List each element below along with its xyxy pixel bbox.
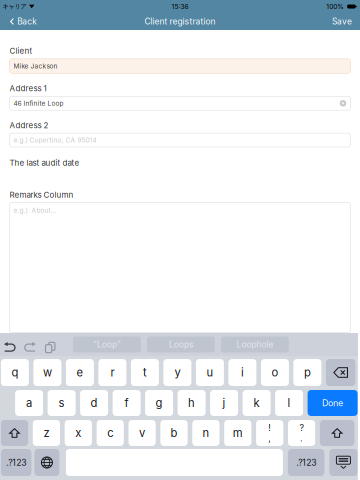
staticText: d [91, 396, 98, 410]
staticText: “Loop” [93, 339, 121, 350]
staticText: Address 1 [9, 83, 46, 93]
staticText: u [206, 366, 213, 379]
button[interactable]: “Loop” [73, 336, 141, 352]
staticText: v [139, 426, 145, 440]
staticText: b [170, 426, 177, 440]
button[interactable]: s [48, 390, 76, 416]
button[interactable]: f [113, 390, 141, 416]
button[interactable]: ? [288, 420, 315, 446]
button[interactable]: q [1, 359, 29, 386]
button[interactable]: r [98, 359, 126, 386]
staticText: e.g.) About... [13, 206, 56, 214]
staticText: n [202, 426, 209, 440]
button[interactable]: Clear text [337, 96, 348, 110]
button[interactable]: Paste [40, 332, 60, 356]
staticText: Remarks Column [9, 190, 73, 200]
staticText: c [107, 426, 113, 440]
button[interactable]: u [196, 359, 224, 386]
button[interactable]: .?123 [1, 449, 31, 476]
button[interactable]: g [145, 390, 173, 416]
staticText: e [76, 366, 83, 379]
button[interactable]: z [33, 420, 60, 446]
staticText: w [43, 366, 52, 379]
staticText: t [143, 366, 147, 379]
button[interactable]: Save [325, 13, 359, 30]
staticText: キャリア [2, 3, 26, 10]
button[interactable]: k [243, 390, 271, 416]
button[interactable]: e [66, 359, 94, 386]
button[interactable]: y [163, 359, 191, 386]
button[interactable]: ! [256, 420, 283, 446]
button[interactable]: n [192, 420, 219, 446]
button[interactable]: Loophole [221, 336, 289, 352]
staticText: e.g.) Cupertino, CA 95014 [13, 136, 96, 144]
staticText: q [11, 366, 18, 379]
button[interactable]: p [293, 359, 321, 386]
staticText: g [156, 396, 163, 410]
staticText: Loops [169, 339, 193, 350]
button[interactable]: w [33, 359, 61, 386]
button[interactable]: Back [1, 13, 46, 30]
button[interactable]: Redo [20, 332, 40, 356]
button[interactable]: x [65, 420, 92, 446]
staticText: k [254, 396, 260, 410]
staticText: Save [332, 16, 352, 27]
button[interactable]: h [178, 390, 206, 416]
staticText: , [268, 433, 271, 444]
button[interactable]: v [128, 420, 156, 446]
staticText: j [223, 396, 226, 410]
staticText: z [43, 426, 49, 440]
button[interactable]: b [160, 420, 188, 446]
staticText: Back [17, 16, 37, 27]
button[interactable]: Done [308, 390, 358, 416]
button[interactable]: c [97, 420, 124, 446]
button[interactable]: i [228, 359, 256, 386]
staticText: Loophole [236, 339, 273, 350]
button[interactable]: Undo [0, 332, 20, 356]
staticText: 15:36 [171, 2, 188, 11]
button[interactable]: Hide keyboard [329, 449, 357, 476]
staticText: Address 2 [9, 120, 48, 130]
staticText: r [110, 366, 114, 379]
button[interactable]: l [275, 390, 303, 416]
staticText: Client registration [144, 16, 215, 27]
button[interactable]: d [80, 390, 108, 416]
staticText: h [188, 396, 195, 410]
staticText: Client [9, 46, 32, 56]
button[interactable]: .?123 [288, 449, 324, 476]
staticText: .?123 [296, 457, 316, 468]
staticText: . [300, 433, 303, 444]
button[interactable]: a [15, 390, 43, 416]
staticText: l [288, 396, 291, 410]
staticText: a [26, 396, 32, 410]
staticText: The last audit date [9, 158, 79, 168]
button[interactable]: m [224, 420, 251, 446]
staticText: Mike Jackson [13, 62, 57, 70]
button[interactable]: t [131, 359, 159, 386]
button[interactable]: j [210, 390, 238, 416]
staticText: i [241, 366, 244, 379]
button[interactable]: Shift [320, 420, 354, 446]
staticText: f [125, 396, 129, 410]
staticText: m [233, 426, 243, 440]
staticText: o [271, 366, 278, 379]
staticText: 100% [326, 2, 344, 11]
staticText: 46 Infinite Loop [13, 99, 63, 107]
staticText: ! [268, 422, 271, 433]
staticText: ? [300, 422, 304, 433]
button[interactable]: Next keyboard [34, 449, 59, 476]
button[interactable]: Loops [147, 336, 215, 352]
staticText: x [75, 426, 81, 440]
button[interactable]: Shift [1, 420, 28, 446]
staticText: y [174, 366, 180, 379]
button[interactable]: Delete [326, 359, 355, 386]
button[interactable]: o [261, 359, 289, 386]
staticText: Done [322, 398, 343, 408]
staticText: p [304, 366, 311, 379]
staticText: s [59, 396, 65, 410]
staticText: .?123 [6, 457, 26, 468]
